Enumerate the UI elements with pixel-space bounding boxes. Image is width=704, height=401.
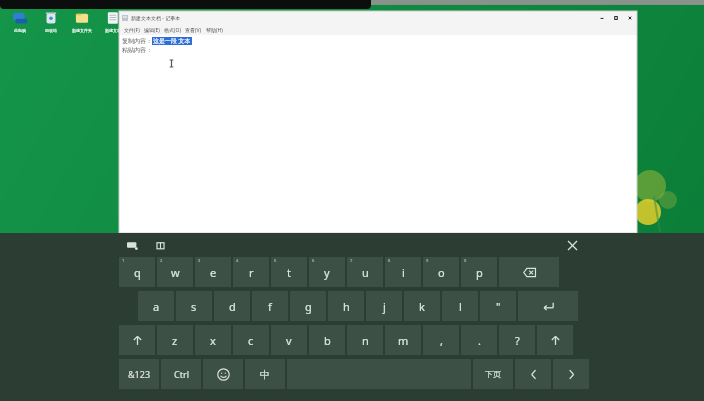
button[interactable]: g xyxy=(290,291,326,321)
staticText: h xyxy=(343,299,350,314)
staticText: b xyxy=(324,333,331,348)
staticText: c xyxy=(248,333,254,348)
staticText: x xyxy=(210,333,216,348)
staticText: 新建文本文档 - 记事本 xyxy=(131,15,181,22)
staticText: 复制内容： xyxy=(122,37,152,45)
button[interactable]: 格式(O) xyxy=(162,27,183,34)
staticText: s xyxy=(191,299,197,314)
staticText: v xyxy=(286,333,292,348)
button[interactable]: Shift xyxy=(119,325,155,355)
button[interactable]: Shift xyxy=(537,325,573,355)
staticText: 1 xyxy=(122,258,125,263)
button[interactable]: Next xyxy=(553,359,589,389)
button[interactable]: 下页 xyxy=(473,359,513,389)
staticText: 粘贴内容： xyxy=(122,46,152,54)
staticText: l xyxy=(459,299,462,314)
button[interactable]: Close xyxy=(623,11,637,25)
button[interactable]: 中 xyxy=(245,359,285,389)
button[interactable]: 帮助(H) xyxy=(204,27,225,34)
button[interactable]: 文件(F) xyxy=(122,27,142,34)
staticText: 7 xyxy=(350,258,353,263)
button[interactable]: f xyxy=(252,291,288,321)
button[interactable]: n xyxy=(347,325,383,355)
button[interactable]: u xyxy=(347,257,383,287)
button[interactable]: x xyxy=(195,325,231,355)
staticText: o xyxy=(438,265,445,280)
button[interactable]: s xyxy=(176,291,212,321)
staticText: 9 xyxy=(426,258,429,263)
staticText: 新建文本 xyxy=(105,28,121,33)
button[interactable]: Backspace xyxy=(499,257,559,287)
button[interactable]: i xyxy=(385,257,421,287)
staticText: 0 xyxy=(464,258,467,263)
button[interactable]: c xyxy=(233,325,269,355)
button[interactable]: w xyxy=(157,257,193,287)
button[interactable]: Maximize xyxy=(609,11,623,25)
staticText: 这是一段 文本 xyxy=(153,37,191,45)
staticText: 文件(F) xyxy=(124,27,140,34)
staticText: . xyxy=(478,333,481,348)
staticText: 格式(O) xyxy=(164,27,181,34)
button[interactable]: j xyxy=(366,291,402,321)
staticText: e xyxy=(210,265,217,280)
staticText: 8 xyxy=(388,258,391,263)
button[interactable]: Keyboard layout xyxy=(124,237,140,253)
button[interactable]: Ctrl xyxy=(161,359,201,389)
staticText: m xyxy=(398,333,409,348)
button[interactable]: 查看(V) xyxy=(183,27,204,34)
staticText: g xyxy=(305,299,312,314)
staticText: w xyxy=(171,265,180,280)
button[interactable]: m xyxy=(385,325,421,355)
button[interactable]: l xyxy=(442,291,478,321)
button[interactable]: r xyxy=(233,257,269,287)
staticText: u xyxy=(362,265,369,280)
button[interactable]: k xyxy=(404,291,440,321)
staticText: r xyxy=(249,265,254,280)
staticText: 2 xyxy=(160,258,163,263)
staticText: ? xyxy=(515,333,520,348)
button[interactable]: o xyxy=(423,257,459,287)
button[interactable]: . xyxy=(461,325,497,355)
staticText: , xyxy=(440,333,443,348)
staticText: k xyxy=(419,299,425,314)
button[interactable]: 此电脑 xyxy=(4,10,35,33)
button[interactable]: , xyxy=(423,325,459,355)
button[interactable]: a xyxy=(138,291,174,321)
staticText: 5 xyxy=(274,258,277,263)
staticText: j xyxy=(383,299,386,314)
button[interactable]: b xyxy=(309,325,345,355)
button[interactable]: v xyxy=(271,325,307,355)
button[interactable]: h xyxy=(328,291,364,321)
button[interactable]: ? xyxy=(499,325,535,355)
staticText: y xyxy=(324,265,330,280)
button[interactable]: 新建文本 xyxy=(97,10,128,33)
button[interactable]: " xyxy=(480,291,516,321)
button[interactable]: e xyxy=(195,257,231,287)
button[interactable]: Close keyboard xyxy=(562,235,582,255)
button[interactable]: &123 xyxy=(119,359,159,389)
button[interactable]: d xyxy=(214,291,250,321)
staticText: 中 xyxy=(260,368,270,381)
staticText: 此电脑 xyxy=(14,28,26,33)
button[interactable]: Enter xyxy=(518,291,578,321)
button[interactable]: 编辑(E) xyxy=(142,27,162,34)
button[interactable]: p xyxy=(461,257,497,287)
staticText: 查看(V) xyxy=(185,27,202,34)
button[interactable]: 新建文件夹 xyxy=(66,10,97,33)
button[interactable]: Previous xyxy=(515,359,551,389)
button[interactable]: q xyxy=(119,257,155,287)
button[interactable]: Emoji xyxy=(203,359,243,389)
staticText: q xyxy=(134,265,141,280)
staticText: " xyxy=(496,299,501,314)
staticText: 帮助(H) xyxy=(206,27,223,34)
staticText: 回收站 xyxy=(45,28,57,33)
button[interactable]: z xyxy=(157,325,193,355)
button[interactable]: y xyxy=(309,257,345,287)
staticText: z xyxy=(172,333,178,348)
button[interactable]: t xyxy=(271,257,307,287)
button[interactable]: Handwriting xyxy=(152,237,168,253)
staticText: n xyxy=(362,333,369,348)
button[interactable]: 回收站 xyxy=(35,10,66,33)
button[interactable]: Minimize xyxy=(595,11,609,25)
